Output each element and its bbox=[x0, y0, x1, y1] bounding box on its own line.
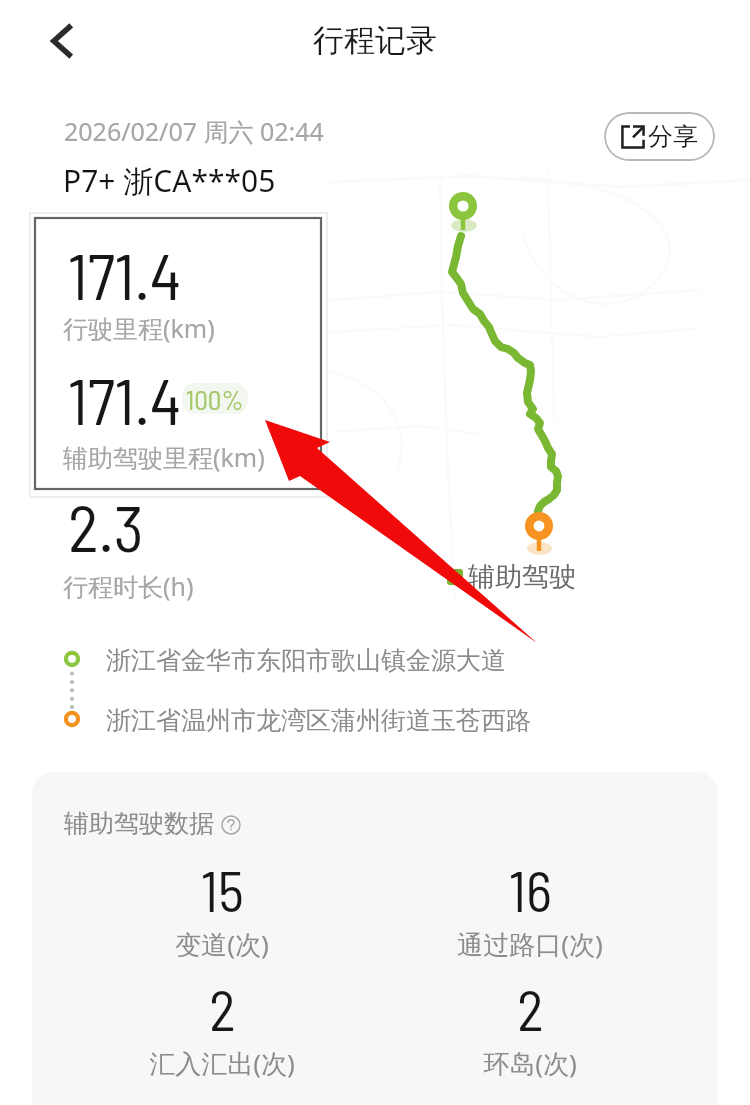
staticText: 浙江省温州市龙湾区蒲州街道玉苍西路 bbox=[106, 705, 531, 736]
staticText: 汇入汇出(次) bbox=[149, 1045, 295, 1081]
button[interactable]: 2 bbox=[112, 975, 332, 1081]
button[interactable]: Back bbox=[40, 18, 86, 64]
staticText: 171.4 bbox=[68, 235, 182, 313]
staticText: 通过路口(次) bbox=[457, 926, 603, 962]
staticText: 2 bbox=[209, 975, 236, 1042]
button[interactable]: 16 bbox=[420, 856, 640, 962]
staticText: 15 bbox=[201, 856, 244, 923]
staticText: 辅助驾驶数据 bbox=[64, 808, 214, 839]
staticText: 辅助驾驶里程(km) bbox=[63, 440, 265, 474]
staticText: 16 bbox=[509, 856, 552, 923]
staticText: 浙江省金华市东阳市歌山镇金源大道 bbox=[106, 645, 506, 676]
staticText: 变道(次) bbox=[175, 926, 269, 962]
button[interactable]: 分享 bbox=[604, 112, 715, 161]
staticText: 100% bbox=[186, 383, 244, 414]
staticText: P7+ 浙CA***05 bbox=[63, 160, 276, 201]
staticText: 环岛(次) bbox=[483, 1045, 577, 1081]
staticText: 2.3 bbox=[68, 487, 144, 565]
staticText: 171.4 bbox=[68, 360, 182, 438]
staticText: 2026/02/07 周六 02:44 bbox=[64, 114, 324, 148]
other: Info bbox=[221, 815, 241, 835]
button[interactable]: 2 bbox=[420, 975, 640, 1081]
staticText: 行驶里程(km) bbox=[63, 311, 215, 345]
button[interactable]: 辅助驾驶数据 bbox=[64, 808, 241, 839]
staticText: 辅助驾驶 bbox=[468, 560, 576, 594]
staticText: 分享 bbox=[648, 121, 698, 152]
staticText: 行程时长(h) bbox=[63, 569, 194, 603]
button[interactable]: 15 bbox=[112, 856, 332, 962]
staticText: 行程记录 bbox=[313, 21, 437, 60]
staticText: 2 bbox=[517, 975, 544, 1042]
